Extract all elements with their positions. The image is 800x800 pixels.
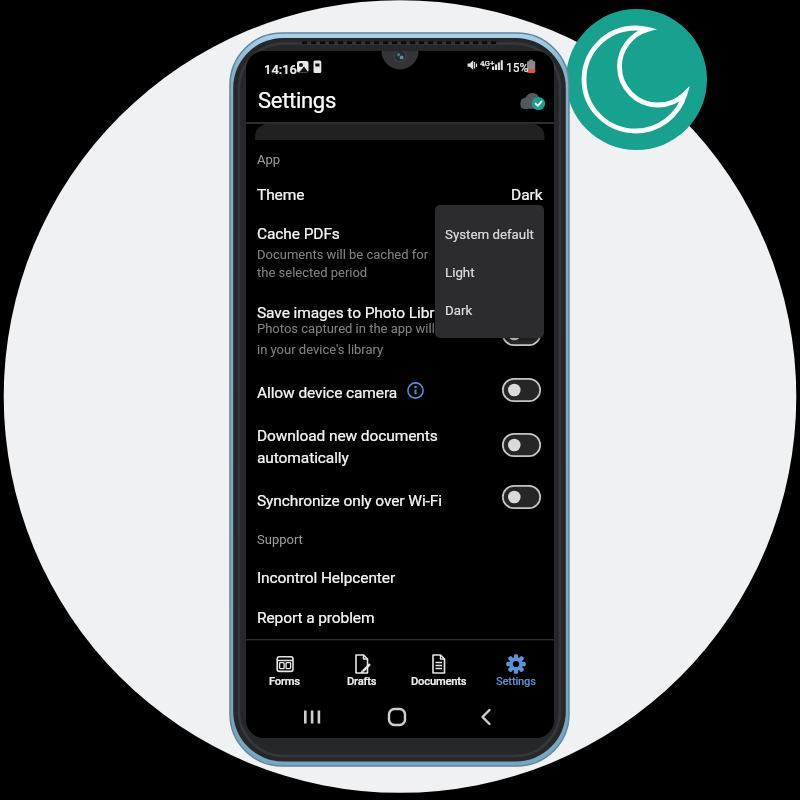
- staticText: Report a problem: [257, 609, 375, 627]
- button[interactable]: [246, 487, 554, 527]
- button[interactable]: [502, 485, 541, 509]
- staticText: 15%: [506, 61, 529, 75]
- staticText: Save images to Photo Library: [257, 304, 456, 322]
- button[interactable]: [246, 563, 554, 595]
- staticText: Support: [257, 532, 303, 547]
- button[interactable]: [246, 221, 554, 283]
- button[interactable]: [474, 705, 502, 731]
- button[interactable]: [502, 433, 541, 457]
- button[interactable]: [381, 705, 413, 731]
- button[interactable]: [246, 423, 554, 469]
- staticText: Photos captured in the app will be saved: [257, 321, 490, 336]
- staticText: the selected period: [257, 265, 368, 280]
- staticText: App: [257, 152, 281, 167]
- button[interactable]: [502, 322, 541, 346]
- button[interactable]: Dark: [435, 295, 544, 329]
- staticText: Light: [445, 265, 475, 281]
- staticText: Allow device camera: [257, 384, 398, 402]
- button[interactable]: [246, 299, 554, 359]
- button[interactable]: [519, 91, 545, 113]
- staticText: Documents will be cached for: [257, 247, 429, 262]
- staticText: Dark: [511, 186, 543, 204]
- staticText: Settings: [496, 675, 536, 688]
- button[interactable]: [246, 378, 554, 418]
- staticText: Incontrol Helpcenter: [257, 569, 396, 587]
- staticText: in your device's library: [257, 342, 384, 357]
- staticText: Cache PDFs: [257, 225, 340, 243]
- staticText: 4G+: [480, 59, 495, 68]
- staticText: 14:16: [264, 62, 298, 77]
- staticText: Drafts: [347, 675, 377, 688]
- button[interactable]: Forms: [246, 641, 323, 738]
- staticText: Download new documents: [257, 427, 438, 445]
- staticText: Settings: [258, 88, 336, 114]
- button[interactable]: [246, 181, 554, 215]
- button[interactable]: Documents: [400, 641, 477, 738]
- staticText: System default: [445, 227, 534, 243]
- staticText: Theme: [257, 186, 305, 204]
- staticText: Documents: [411, 675, 467, 688]
- button[interactable]: Light: [435, 258, 544, 292]
- staticText: Forms: [269, 675, 300, 688]
- button[interactable]: [246, 602, 554, 634]
- button[interactable]: Drafts: [323, 641, 400, 738]
- staticText: automatically: [257, 449, 349, 467]
- button[interactable]: Settings: [477, 641, 554, 738]
- staticText: Synchronize only over Wi-Fi: [257, 492, 442, 510]
- button[interactable]: [502, 378, 541, 402]
- button[interactable]: System default: [435, 219, 544, 253]
- button[interactable]: [296, 705, 330, 731]
- staticText: Dark: [445, 303, 473, 319]
